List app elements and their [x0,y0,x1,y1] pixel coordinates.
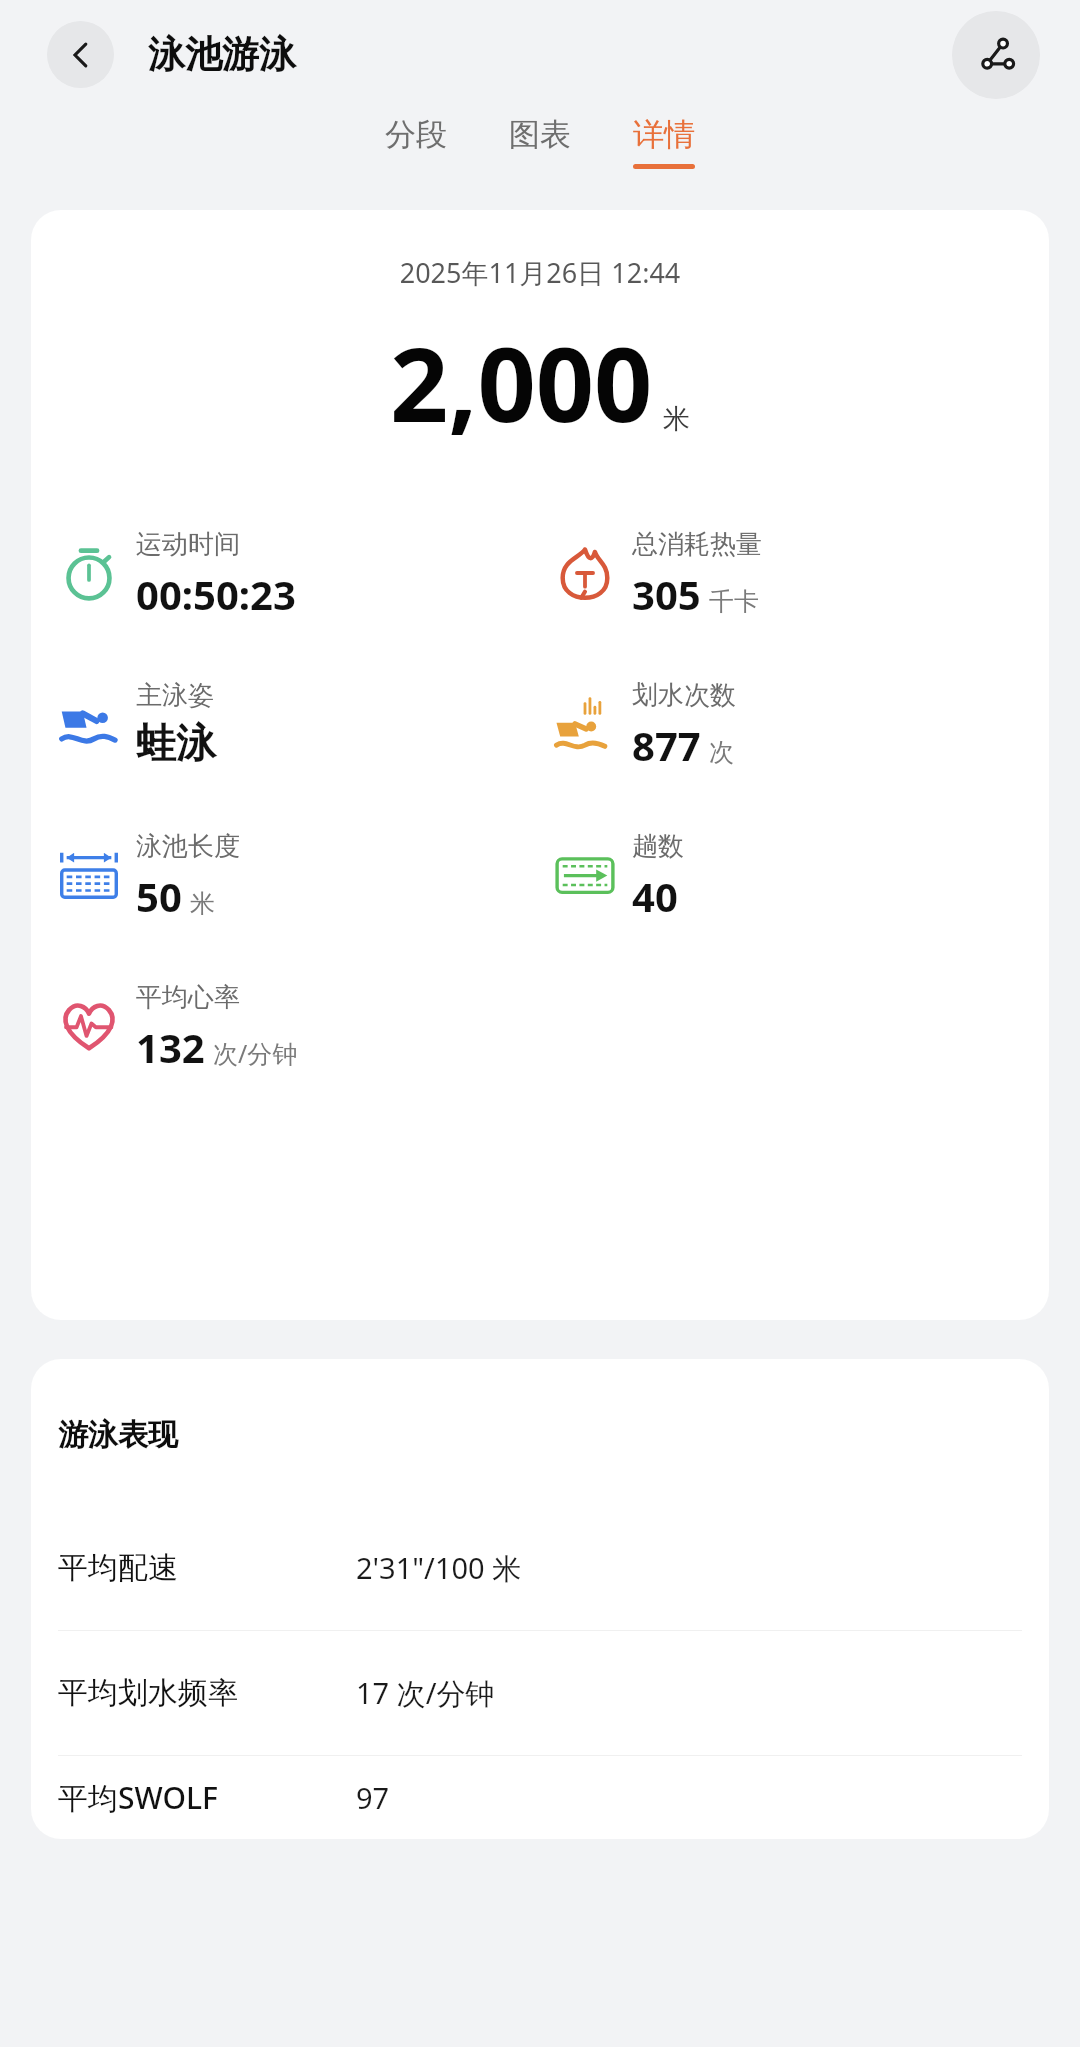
button[interactable]: 运动时间 [31,528,540,621]
staticText: 泳池游泳 [148,31,296,78]
button[interactable]: 平均心率 [31,981,540,1074]
staticText: 2025年11月26日 12:44 [31,254,1049,291]
staticText: 97 [356,1778,390,1817]
staticText: 米 [190,888,215,919]
staticText: 次 [709,737,734,768]
staticText: 平均配速 [58,1549,356,1587]
staticText: 50 [136,869,182,923]
staticText: 305 [632,567,701,621]
button[interactable]: 平均划水频率 [31,1631,1049,1755]
staticText: 划水次数 [632,679,736,712]
button[interactable]: 主泳姿 [31,679,540,768]
staticText: 132 [136,1020,205,1074]
staticText: 图表 [509,115,571,154]
staticText: 米 [663,402,690,436]
button[interactable]: 平均配速 [31,1506,1049,1630]
staticText: 40 [632,869,678,923]
button[interactable]: 划水次数 [540,679,1049,772]
staticText: 千卡 [709,586,759,617]
button[interactable]: 详情 [621,109,707,175]
button[interactable]: 泳池长度 [31,830,540,923]
staticText: 详情 [633,115,695,154]
staticText: 次/分钟 [213,1036,298,1070]
button[interactable]: 趟数 [540,830,1049,923]
staticText: 运动时间 [136,528,240,561]
button[interactable]: 分段 [373,109,459,175]
staticText: 游泳表现 [58,1416,178,1454]
button[interactable]: 总消耗热量 [540,528,1049,621]
staticText: 主泳姿 [136,679,214,712]
staticText: 17 次/分钟 [356,1673,495,1713]
staticText: 877 [632,718,701,772]
button[interactable]: Share [952,11,1040,99]
staticText: 00:50:23 [136,567,296,621]
staticText: 总消耗热量 [632,528,762,561]
staticText: 2'31"/100 米 [356,1548,522,1588]
staticText: 趟数 [632,830,684,863]
staticText: 平均心率 [136,981,240,1014]
staticText: 分段 [385,115,447,154]
staticText: 平均划水频率 [58,1674,356,1712]
staticText: 平均SWOLF [58,1777,356,1818]
button[interactable]: Back [47,21,114,88]
button[interactable]: 图表 [497,109,583,175]
button[interactable]: 平均SWOLF [31,1756,1049,1839]
staticText: 2,000 [390,313,653,452]
staticText: 蛙泳 [136,718,216,768]
staticText: 泳池长度 [136,830,240,863]
